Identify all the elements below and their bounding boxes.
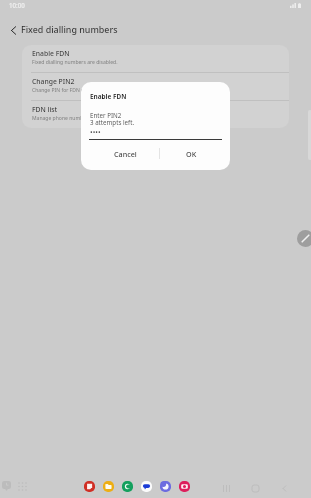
button[interactable]: Cancel — [81, 146, 159, 162]
button[interactable]: Contacts — [122, 481, 133, 492]
button[interactable]: Internet — [160, 481, 171, 492]
button[interactable]: Recent apps — [220, 482, 233, 495]
staticText: Enable FDN — [90, 92, 127, 101]
button[interactable]: Home — [249, 482, 262, 495]
staticText: Change PIN2 — [32, 77, 75, 86]
staticText: OK — [186, 149, 197, 159]
button[interactable]: Navigate up — [5, 22, 21, 38]
staticText: Enter PIN2 3 attempts left. — [90, 111, 135, 127]
staticText: FDN list — [32, 105, 58, 114]
button[interactable]: Recent apps — [1, 481, 12, 492]
staticText: Change PIN for FDN operation. — [32, 87, 106, 94]
staticText: Enable FDN — [32, 49, 70, 58]
button[interactable]: OK — [160, 146, 230, 162]
button[interactable]: Change PIN2 — [22, 73, 289, 100]
staticText: 10:00 — [9, 1, 25, 9]
button[interactable]: Messages — [141, 481, 152, 492]
staticText: Manage phone number list. — [32, 115, 98, 122]
button[interactable]: Edit — [297, 230, 311, 247]
staticText: Fixed dialling numbers are disabled. — [32, 59, 118, 66]
staticText: Fixed dialling numbers — [21, 23, 118, 35]
staticText: •••• — [90, 128, 101, 138]
button[interactable]: My Files — [103, 481, 114, 492]
button[interactable]: Notes — [84, 481, 95, 492]
button[interactable]: Apps — [17, 481, 27, 491]
button[interactable]: Camera — [179, 481, 190, 492]
staticText: Cancel — [114, 149, 137, 159]
button[interactable]: Enable FDN — [22, 45, 289, 72]
button[interactable]: FDN list — [22, 101, 289, 128]
